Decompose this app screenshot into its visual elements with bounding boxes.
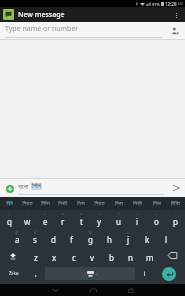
button[interactable]: Back <box>36 284 74 296</box>
staticText: ৭ <box>118 212 120 215</box>
button[interactable]: Home <box>74 284 112 296</box>
staticText: _ <box>71 230 73 235</box>
staticText: নিদিন <box>41 201 50 206</box>
button[interactable]: + <box>119 229 138 247</box>
button[interactable]: শিখাই <box>54 197 72 210</box>
staticText: ৮ <box>137 212 139 215</box>
button[interactable]: # <box>26 229 44 247</box>
staticText: ৪ <box>62 212 64 215</box>
button[interactable]: Add contact <box>168 24 182 38</box>
button[interactable]: শিখতে <box>90 197 109 210</box>
button[interactable]: Recent apps <box>112 284 150 296</box>
button[interactable]: Type name or number <box>5 24 162 38</box>
staticText: j <box>127 234 130 245</box>
staticText: ৬ <box>99 212 101 215</box>
button[interactable]: z <box>26 247 45 264</box>
staticText: k <box>145 234 150 245</box>
staticText: m <box>146 252 154 263</box>
staticText: ৫ <box>80 212 82 215</box>
staticText: + <box>127 230 130 235</box>
staticText: New message <box>18 10 65 20</box>
button[interactable]: ৯ <box>147 211 166 229</box>
button[interactable]: শিখর <box>147 197 166 210</box>
button[interactable]: m <box>140 247 159 264</box>
button[interactable]: - <box>100 229 119 247</box>
button[interactable]: শিখতে <box>18 197 36 210</box>
button[interactable]: নিখিল <box>166 197 185 210</box>
staticText: c <box>72 252 76 263</box>
button[interactable]: & <box>81 229 100 247</box>
button[interactable]: ৩ <box>36 211 54 229</box>
staticText: নিধন <box>115 201 123 206</box>
button[interactable]: _ <box>62 229 81 247</box>
button[interactable]: Shift <box>0 247 26 264</box>
staticText: p <box>173 216 178 227</box>
staticText: নিখিল <box>171 201 180 206</box>
button[interactable]: ৬ <box>90 211 109 229</box>
staticText: e <box>43 216 48 227</box>
staticText: q <box>7 216 12 227</box>
staticText: u <box>116 216 121 227</box>
staticText: শিখতে <box>22 201 33 206</box>
button[interactable]: , <box>28 264 44 283</box>
staticText: শিখতে <box>94 201 105 206</box>
button[interactable]: ২ <box>18 211 36 229</box>
button[interactable]: ১ <box>0 211 18 229</box>
staticText: g <box>88 234 93 245</box>
button[interactable]: ৭ <box>109 211 128 229</box>
staticText: ) <box>166 230 168 235</box>
button[interactable]: More options <box>169 8 183 22</box>
button[interactable]: c <box>64 247 83 264</box>
staticText: ০ <box>175 212 177 215</box>
button[interactable]: ) <box>157 229 176 247</box>
staticText: v <box>90 252 95 263</box>
button[interactable]: নিধি <box>0 197 18 210</box>
staticText: বাংলা <box>18 182 31 191</box>
staticText: 97% <box>152 2 160 7</box>
staticText: # <box>34 230 37 235</box>
button[interactable]: Enter <box>152 264 185 283</box>
staticText: n <box>128 252 133 263</box>
staticText: নিধি <box>6 201 13 206</box>
button[interactable]: ৪ <box>54 211 72 229</box>
staticText: y <box>97 216 102 227</box>
button[interactable]: Send <box>169 181 183 195</box>
staticText: ৳ <box>52 230 54 233</box>
staticText: । <box>143 269 146 279</box>
button[interactable]: বাংলা <box>18 182 164 195</box>
button[interactable]: Symbols <box>0 264 28 283</box>
button[interactable]: ৫ <box>72 211 90 229</box>
button[interactable]: ০ <box>166 211 185 229</box>
button[interactable]: v <box>83 247 102 264</box>
button[interactable]: b <box>102 247 121 264</box>
button[interactable]: x <box>45 247 64 264</box>
staticText: x <box>52 252 57 263</box>
staticText: l <box>165 234 168 245</box>
staticText: h <box>107 234 112 245</box>
staticText: o <box>154 216 159 227</box>
button[interactable]: নিখব <box>72 197 90 210</box>
button[interactable]: শিখনি <box>128 197 147 210</box>
staticText: d <box>51 234 56 245</box>
staticText: ৩ <box>44 212 46 215</box>
button[interactable]: ৳ <box>44 229 62 247</box>
button[interactable]: । <box>136 264 152 283</box>
staticText: i <box>136 216 139 227</box>
staticText: z <box>34 252 38 263</box>
staticText: শিখনি <box>133 201 142 206</box>
staticText: ৯ <box>156 212 158 215</box>
button[interactable]: ( <box>138 229 157 247</box>
staticText: - <box>109 230 111 235</box>
staticText: Type name or number <box>5 24 79 34</box>
staticText: শিখাই <box>58 201 68 206</box>
button[interactable]: Space <box>45 267 135 280</box>
button[interactable]: Add attachment <box>3 182 16 195</box>
staticText: ১ <box>8 212 10 215</box>
button[interactable]: ৮ <box>128 211 147 229</box>
staticText: a <box>15 234 20 245</box>
button[interactable]: নিধন <box>109 197 128 210</box>
button[interactable]: n <box>121 247 140 264</box>
button[interactable]: Backspace <box>159 247 185 264</box>
button[interactable]: @ <box>8 229 26 247</box>
button[interactable]: নিদিন <box>36 197 54 210</box>
